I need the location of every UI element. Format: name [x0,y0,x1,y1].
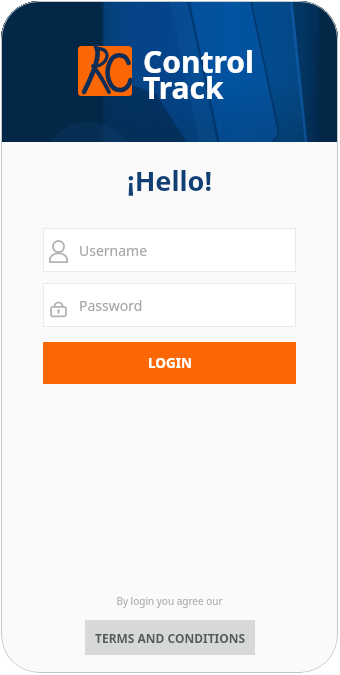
button[interactable]: TERMS AND CONDITIONS [85,620,255,655]
staticText: TERMS AND CONDITIONS [95,630,246,646]
staticText: Username [79,241,148,260]
staticText: ¡Hello! [1,162,338,199]
staticText: LOGIN [148,354,192,372]
staticText: Password [79,296,143,315]
staticText: Control [143,41,255,82]
staticText: Track [143,67,224,108]
button[interactable]: Username [43,228,296,272]
staticText: By login you agree our [1,594,338,608]
button[interactable]: Password [43,283,296,327]
button[interactable]: LOGIN [43,342,296,384]
